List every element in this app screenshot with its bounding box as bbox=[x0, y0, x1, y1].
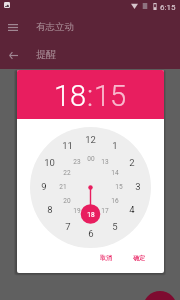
staticText: 有志立动 bbox=[36, 21, 74, 33]
staticText: 19 bbox=[73, 207, 81, 215]
button[interactable]: 15 bbox=[94, 79, 127, 113]
staticText: 6 bbox=[88, 228, 94, 239]
staticText: 2 bbox=[129, 157, 135, 168]
staticText: 16 bbox=[111, 197, 119, 205]
staticText: 15 bbox=[115, 183, 123, 191]
button[interactable]: Back bbox=[0, 42, 26, 68]
staticText: 11 bbox=[62, 140, 73, 151]
staticText: 13 bbox=[101, 158, 109, 166]
staticText: 8 bbox=[47, 204, 53, 215]
staticText: 1 bbox=[112, 140, 118, 151]
staticText: 21 bbox=[59, 183, 67, 191]
staticText: 提醒 bbox=[36, 48, 56, 61]
staticText: 5 bbox=[112, 221, 118, 232]
staticText: 取消 bbox=[100, 254, 112, 262]
staticText: 18 bbox=[87, 211, 95, 219]
staticText: 7 bbox=[65, 221, 71, 232]
button[interactable]: Navigation menu bbox=[0, 14, 26, 40]
staticText: : bbox=[87, 79, 94, 113]
staticText: 17 bbox=[101, 207, 109, 215]
staticText: 22 bbox=[63, 169, 71, 177]
button[interactable]: 18 bbox=[54, 79, 87, 113]
staticText: 20 bbox=[63, 197, 71, 205]
button[interactable]: 确定 bbox=[128, 250, 150, 266]
staticText: 10 bbox=[44, 157, 55, 168]
staticText: 00 bbox=[87, 155, 95, 163]
button[interactable]: Add reminder bbox=[143, 291, 177, 300]
staticText: 确定 bbox=[133, 254, 145, 262]
staticText: 4 bbox=[129, 204, 135, 215]
staticText: 23 bbox=[73, 158, 81, 166]
staticText: 14 bbox=[111, 169, 119, 177]
button[interactable]: 取消 bbox=[95, 250, 117, 266]
staticText: 12 bbox=[85, 134, 96, 145]
staticText: 3 bbox=[135, 181, 141, 192]
staticText: 9 bbox=[41, 181, 47, 192]
staticText: 6:15 bbox=[160, 3, 176, 12]
